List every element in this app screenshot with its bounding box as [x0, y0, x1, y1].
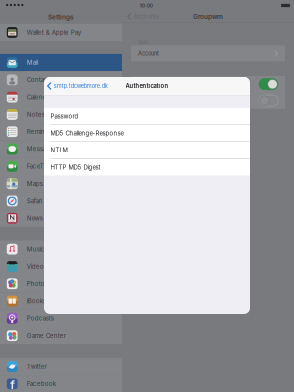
staticText: iBooks: [27, 297, 46, 305]
button[interactable]: Password: [44, 108, 250, 124]
staticText: MD5 Challenge-Response: [51, 130, 124, 137]
button[interactable]: Maps: [0, 175, 122, 192]
staticText: Photos: [27, 280, 48, 287]
button[interactable]: Photos: [0, 275, 122, 292]
staticText: Contacts: [27, 76, 53, 83]
staticText: Accounts: [134, 13, 159, 20]
button[interactable]: Calendar: [0, 88, 122, 106]
button[interactable]: Option, off: [259, 95, 278, 106]
staticText: Settings: [48, 13, 74, 21]
button[interactable]: NTLM: [44, 142, 250, 158]
staticText: Wallet & Apple Pay: [27, 29, 81, 36]
staticText: Groupwm: [193, 12, 223, 20]
staticText: Authentication: [125, 82, 168, 89]
staticText: Music: [27, 245, 45, 253]
staticText: News: [27, 214, 43, 222]
staticText: IMAP: [138, 40, 149, 45]
button[interactable]: Game Center: [0, 327, 122, 344]
button[interactable]: f: [0, 375, 122, 392]
button[interactable]: HTTP MD5 Digest: [44, 159, 250, 175]
button[interactable]: News: [0, 210, 122, 227]
button[interactable]: smtp.tdcwebmore.dk: [44, 79, 108, 92]
button[interactable]: Authentication, on: [259, 79, 278, 90]
staticText: Maps: [27, 180, 43, 187]
staticText: Account: [138, 50, 159, 57]
staticText: Notes: [27, 111, 45, 118]
staticText: Calendar: [27, 93, 52, 101]
button[interactable]: MD5 Challenge-Response: [44, 125, 250, 141]
button[interactable]: Wallet & Apple Pay: [0, 24, 122, 41]
staticText: Podcasts: [27, 315, 54, 322]
staticText: Facebook: [27, 380, 56, 387]
staticText: Mail: [27, 59, 38, 66]
staticText: f: [10, 378, 15, 392]
staticText: HTTP MD5 Digest: [51, 164, 101, 171]
button[interactable]: Safari: [0, 192, 122, 210]
staticText: 10:00: [139, 2, 152, 9]
button[interactable]: Reminders: [0, 123, 122, 140]
staticText: Game Center: [27, 332, 66, 339]
staticText: FaceTime: [27, 163, 54, 170]
staticText: NTLM: [51, 147, 68, 154]
button[interactable]: Account: [131, 45, 285, 61]
button[interactable]: Notes: [0, 106, 122, 123]
staticText: Safari: [27, 197, 42, 205]
button[interactable]: Mail: [0, 54, 122, 71]
staticText: Authentication: [138, 81, 174, 88]
button[interactable]: Contacts: [0, 71, 122, 88]
staticText: Password: [51, 113, 79, 120]
button[interactable]: iBooks: [0, 292, 122, 310]
button[interactable]: Twitter: [0, 358, 122, 375]
staticText: Messages: [27, 145, 57, 153]
staticText: Reminders: [27, 128, 58, 135]
staticText: smtp.tdcwebmore.dk: [54, 83, 108, 89]
staticText: Twitter: [27, 363, 47, 370]
button[interactable]: FaceTime: [0, 158, 122, 175]
button[interactable]: Music: [0, 240, 122, 258]
button[interactable]: Podcasts: [0, 310, 122, 327]
button[interactable]: Accounts: [122, 11, 159, 22]
button[interactable]: Videos: [0, 258, 122, 275]
staticText: Videos: [27, 263, 47, 270]
button[interactable]: Messages: [0, 140, 122, 158]
